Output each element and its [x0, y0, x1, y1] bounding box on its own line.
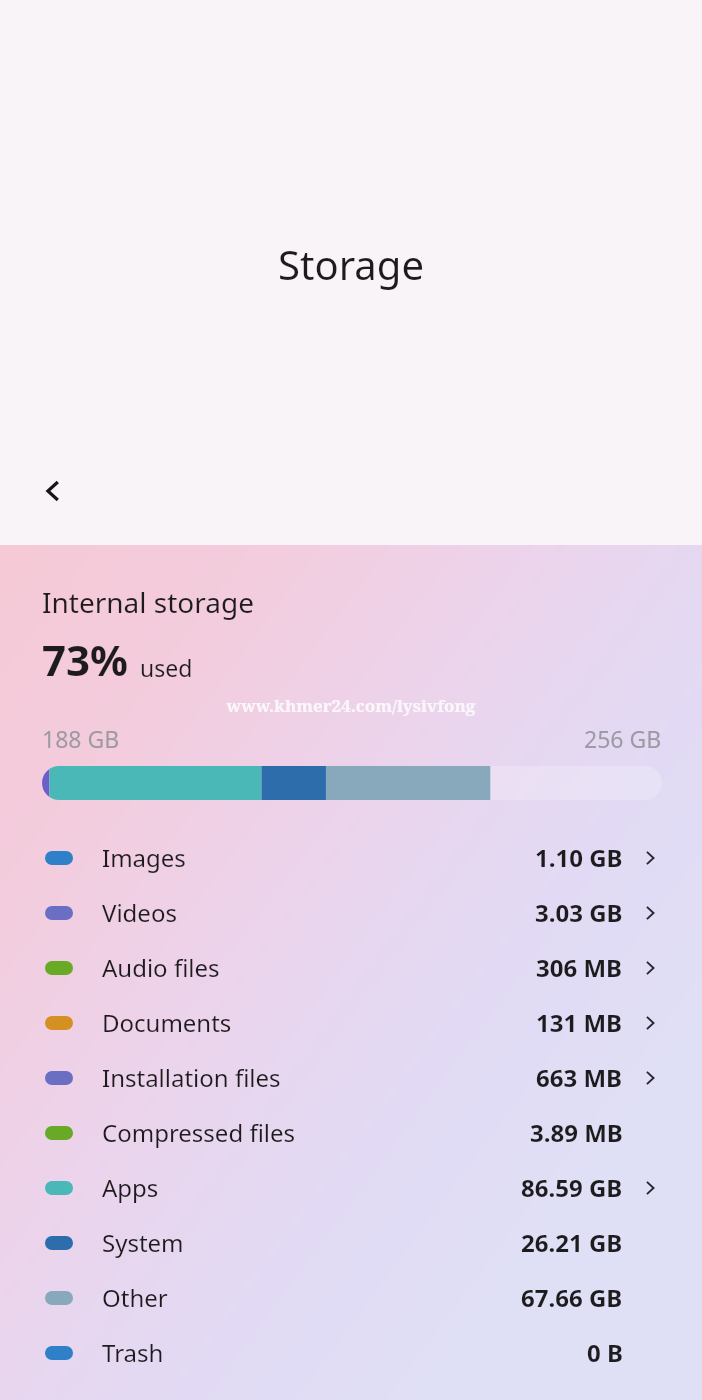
staticText: 131 MB	[536, 1006, 623, 1039]
staticText: 256 GB	[584, 723, 662, 754]
staticText: 3.89 MB	[530, 1116, 623, 1149]
staticText: Images	[102, 841, 186, 874]
staticText: 67.66 GB	[521, 1281, 623, 1314]
button[interactable]: Documents	[0, 995, 702, 1050]
staticText: 3.03 GB	[535, 896, 623, 929]
button[interactable]: Back	[20, 458, 86, 524]
staticText: used	[140, 652, 193, 683]
button[interactable]: Trash	[0, 1325, 702, 1380]
staticText: Apps	[102, 1171, 159, 1204]
staticText: Storage	[0, 237, 702, 291]
button[interactable]: Audio files	[0, 940, 702, 995]
staticText: 306 MB	[536, 951, 623, 984]
staticText: Videos	[102, 896, 177, 929]
staticText: 1.10 GB	[535, 841, 623, 874]
staticText: www.khmer24.com/lysivfong	[0, 694, 702, 717]
button[interactable]: Installation files	[0, 1050, 702, 1105]
staticText: 188 GB	[42, 723, 120, 754]
button[interactable]: Videos	[0, 885, 702, 940]
staticText: System	[102, 1226, 184, 1259]
staticText: Other	[102, 1281, 168, 1314]
staticText: Documents	[102, 1006, 232, 1039]
button[interactable]: Other	[0, 1270, 702, 1325]
staticText: Trash	[102, 1336, 164, 1369]
button[interactable]: System	[0, 1215, 702, 1270]
staticText: 73%	[42, 631, 128, 688]
button[interactable]: Images	[0, 830, 702, 885]
staticText: 663 MB	[536, 1061, 623, 1094]
button[interactable]: Apps	[0, 1160, 702, 1215]
staticText: Internal storage	[42, 583, 254, 621]
staticText: Compressed files	[102, 1116, 296, 1149]
staticText: 26.21 GB	[521, 1226, 623, 1259]
staticText: 86.59 GB	[521, 1171, 623, 1204]
staticText: Audio files	[102, 951, 220, 984]
button[interactable]: Compressed files	[0, 1105, 702, 1160]
staticText: 0 B	[587, 1336, 623, 1369]
staticText: Installation files	[102, 1061, 281, 1094]
